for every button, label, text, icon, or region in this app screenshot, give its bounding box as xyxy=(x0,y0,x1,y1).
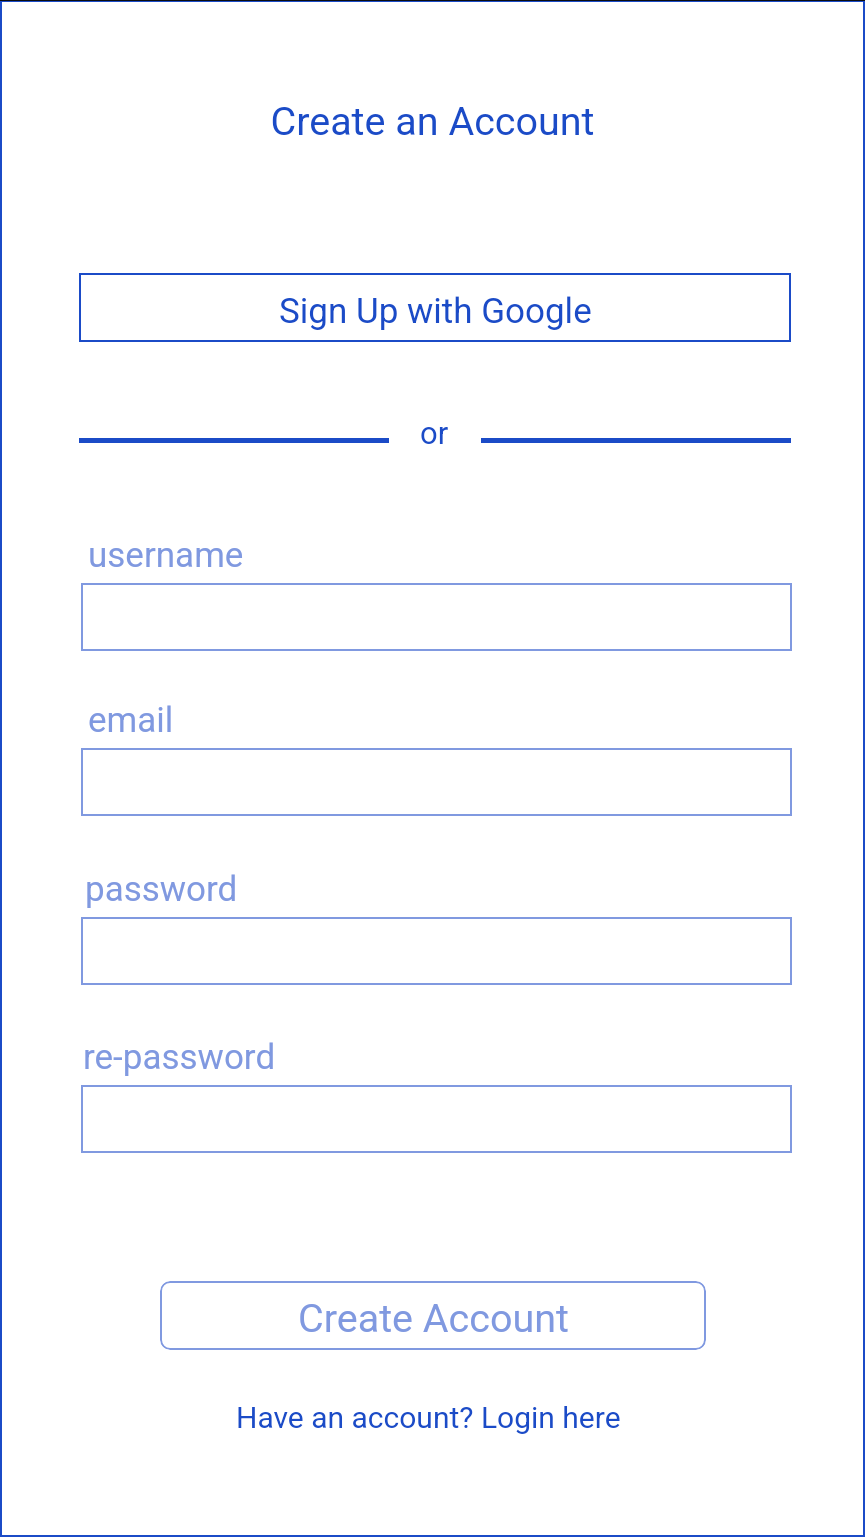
staticText: username xyxy=(88,535,244,576)
button[interactable]: Have an account? Login here xyxy=(236,1400,621,1435)
staticText: password xyxy=(85,869,238,910)
button[interactable]: Create Account xyxy=(160,1281,706,1350)
button[interactable]: username xyxy=(81,583,792,651)
staticText: Create an Account xyxy=(0,98,865,144)
button[interactable]: re-password xyxy=(81,1085,792,1153)
button[interactable]: password xyxy=(81,917,792,985)
button[interactable]: email xyxy=(81,748,792,816)
staticText: Sign Up with Google xyxy=(279,291,592,332)
staticText: email xyxy=(88,700,174,741)
staticText: Create Account xyxy=(298,1295,569,1341)
staticText: re-password xyxy=(83,1037,276,1078)
button[interactable]: Sign Up with Google xyxy=(79,273,791,342)
staticText: or xyxy=(420,415,449,451)
